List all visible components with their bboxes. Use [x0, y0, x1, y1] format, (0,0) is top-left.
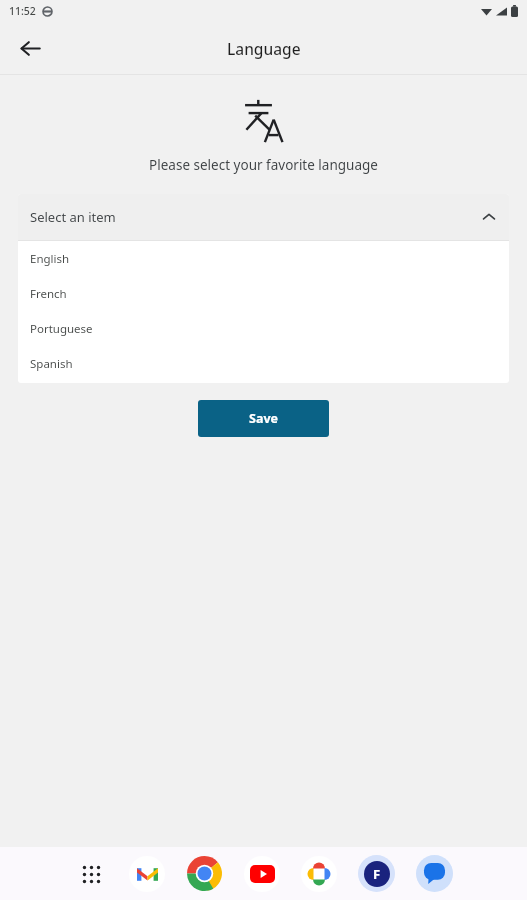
button[interactable]: Photos — [301, 856, 337, 892]
button[interactable]: YouTube — [244, 856, 280, 892]
button[interactable]: Portuguese — [18, 311, 509, 346]
other: Collapse — [481, 209, 497, 225]
staticText: French — [30, 286, 67, 302]
staticText: Spanish — [30, 356, 73, 372]
button[interactable]: Spanish — [18, 346, 509, 381]
button[interactable]: English — [18, 241, 509, 276]
button[interactable]: App — [358, 855, 395, 892]
button[interactable]: Messages — [416, 855, 453, 892]
staticText: Language — [227, 38, 301, 59]
staticText: Select an item — [30, 208, 116, 226]
button[interactable]: Back — [8, 26, 52, 70]
button[interactable]: French — [18, 276, 509, 311]
staticText: Please select your favorite language — [149, 156, 378, 174]
staticText: Portuguese — [30, 321, 93, 337]
staticText: F — [373, 865, 381, 883]
button[interactable]: All apps — [74, 857, 108, 891]
button[interactable]: Select an item — [18, 194, 509, 240]
button[interactable]: Gmail — [129, 856, 165, 892]
staticText: Save — [249, 410, 278, 427]
staticText: 11:52 — [9, 4, 36, 18]
button[interactable]: Chrome — [186, 855, 223, 892]
button[interactable]: Save — [198, 400, 329, 437]
staticText: English — [30, 251, 70, 267]
